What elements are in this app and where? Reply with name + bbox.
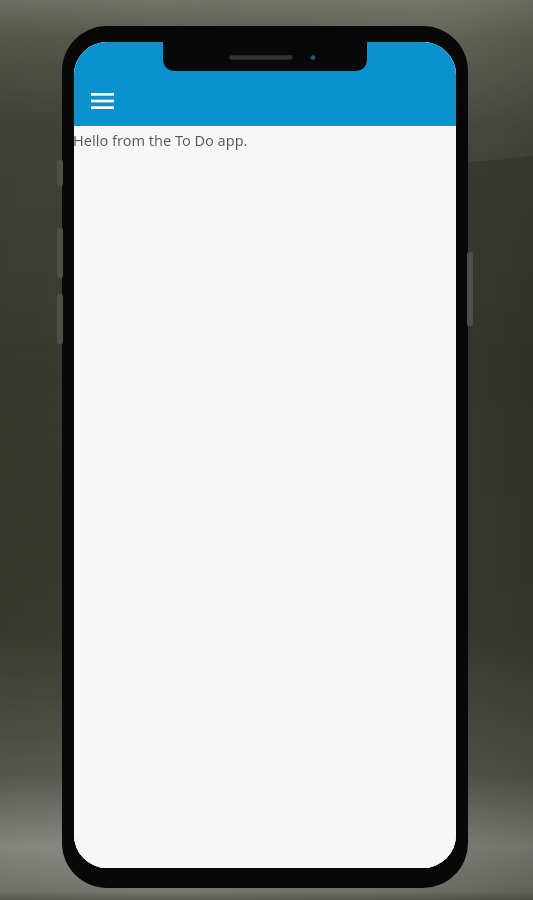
staticText: Hello from the To Do app. [74, 130, 248, 150]
button[interactable]: Open navigation menu [82, 84, 122, 118]
